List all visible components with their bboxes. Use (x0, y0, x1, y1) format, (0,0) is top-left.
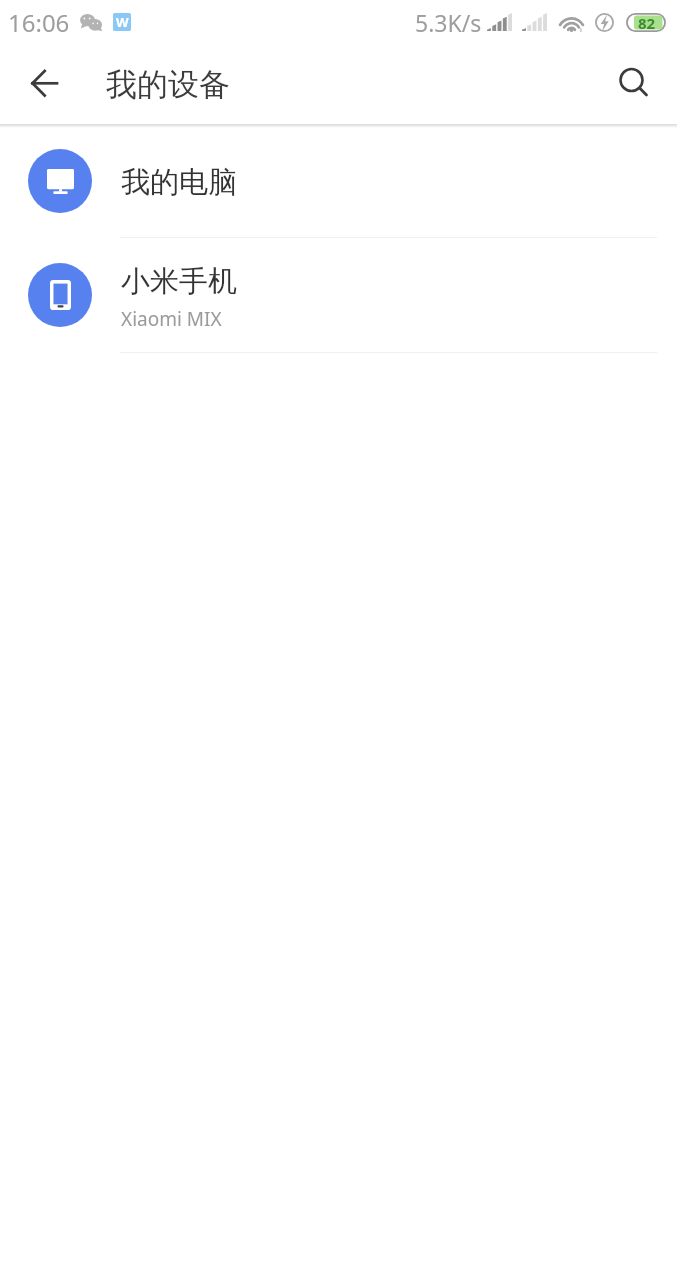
button[interactable]: 我的电脑 (0, 124, 677, 238)
staticText: 5.3K/s (415, 7, 482, 38)
staticText: 小米手机 (121, 263, 237, 300)
button[interactable]: Search (605, 56, 661, 112)
staticText: 我的设备 (106, 65, 230, 104)
staticText: W (116, 13, 129, 31)
staticText: 我的电脑 (121, 164, 237, 201)
staticText: Xiaomi MIX (121, 306, 222, 332)
button[interactable]: Back (14, 54, 74, 114)
staticText: 82 (638, 13, 656, 32)
button[interactable]: 小米手机 (0, 238, 677, 353)
staticText: 16:06 (8, 6, 70, 39)
